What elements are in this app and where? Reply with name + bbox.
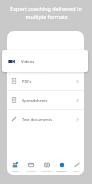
staticText: Spreadsheets <box>22 98 48 103</box>
staticText: Home <box>12 169 19 172</box>
button[interactable]: Spreadsheets <box>7 91 84 109</box>
button[interactable]: Lessons <box>23 158 39 175</box>
staticText: Videos <box>21 58 35 64</box>
staticText: Coaching <box>56 169 67 172</box>
staticText: Expert coaching delivered in <box>10 5 82 12</box>
button[interactable]: Home <box>7 158 23 175</box>
button[interactable]: Videos <box>2 50 88 72</box>
button[interactable]: Text documents <box>7 110 84 128</box>
staticText: Text documents <box>22 117 52 122</box>
button[interactable]: PDFs <box>7 72 84 90</box>
button[interactable]: Coaching <box>54 158 69 175</box>
button[interactable]: Learn <box>69 158 84 175</box>
staticText: PDFs <box>22 79 32 84</box>
staticText: multiple formats <box>25 13 68 20</box>
button[interactable]: Programs <box>39 158 54 175</box>
staticText: Programs <box>41 169 52 172</box>
staticText: Learn <box>73 169 80 172</box>
staticText: Lessons <box>27 169 36 172</box>
